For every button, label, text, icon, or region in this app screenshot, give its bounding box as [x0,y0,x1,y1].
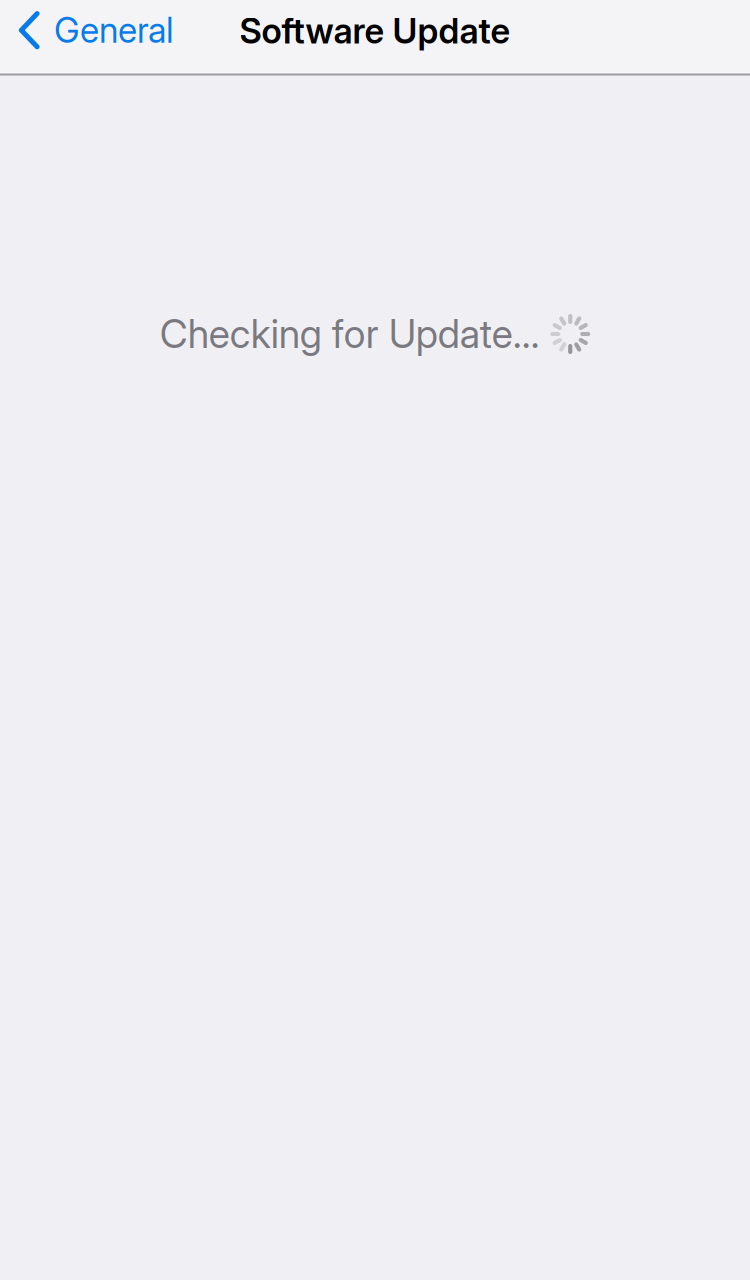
staticText: Checking for Update… [160,311,540,357]
staticText: Software Update [239,10,510,52]
staticText: General [54,9,174,51]
button[interactable]: General [0,0,188,74]
